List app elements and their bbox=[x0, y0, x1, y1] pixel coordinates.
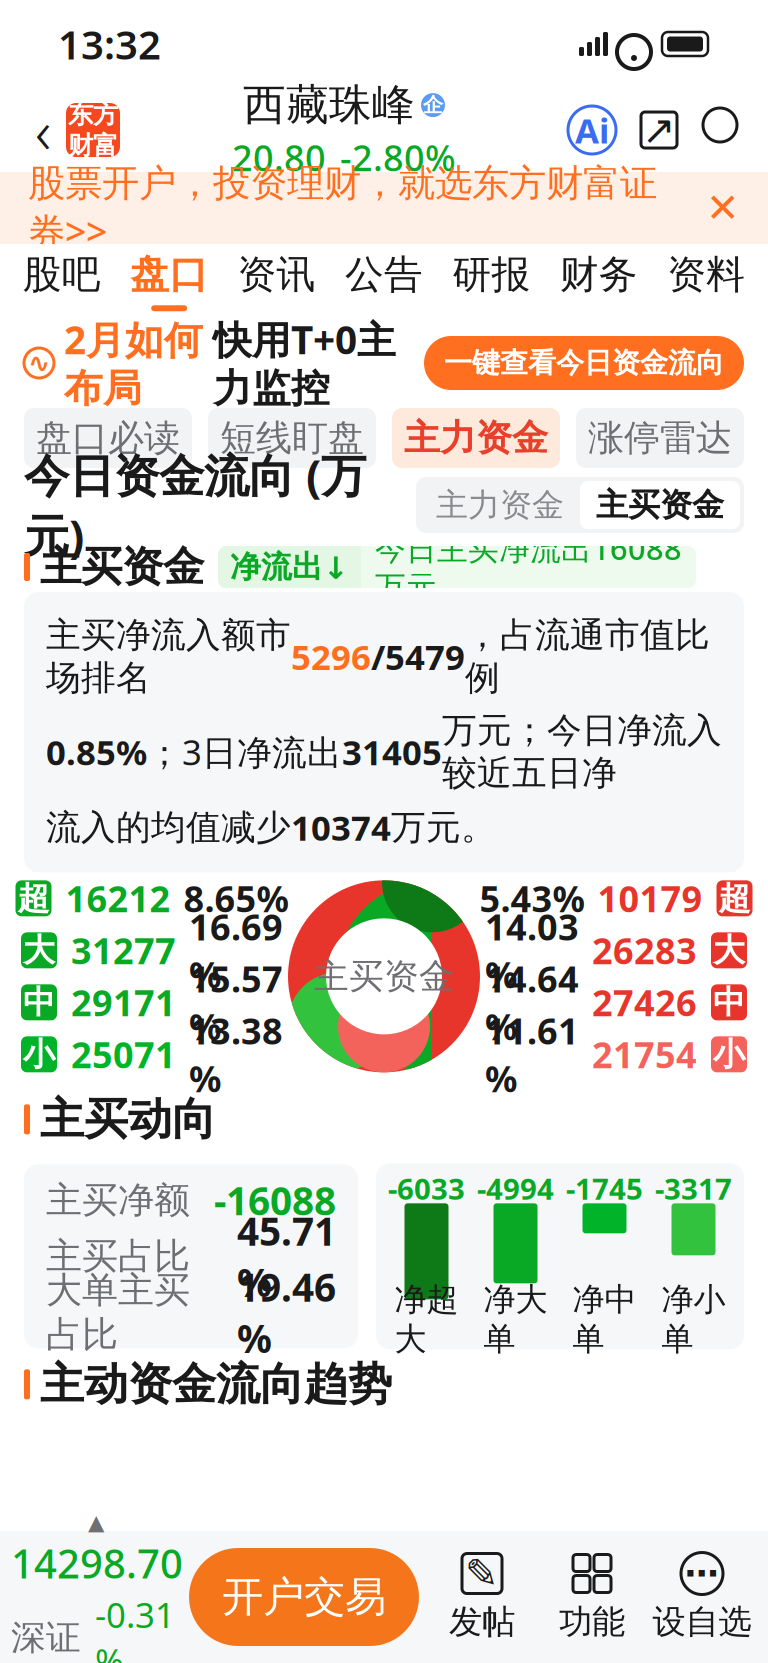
staticText: ✎ bbox=[465, 1551, 499, 1596]
staticText: 16.69% bbox=[189, 903, 283, 998]
staticText: 西藏珠峰 bbox=[243, 79, 415, 131]
staticText: 25071 bbox=[71, 1030, 176, 1078]
staticText: 14.64% bbox=[485, 955, 579, 1050]
button[interactable]: Back bbox=[20, 101, 66, 159]
staticText: 主力资金 bbox=[404, 416, 548, 460]
button[interactable]: 功能 bbox=[537, 1551, 647, 1642]
staticText: 资料 bbox=[667, 251, 745, 298]
staticText: -6033 bbox=[388, 1169, 465, 1208]
staticText: 公告 bbox=[345, 251, 423, 298]
staticText: /5479 bbox=[371, 634, 465, 680]
staticText: 31277 bbox=[71, 926, 176, 974]
staticText: ⋯ bbox=[684, 1554, 719, 1593]
button[interactable]: 主力资金 bbox=[392, 408, 560, 468]
staticText: 小 bbox=[23, 1035, 55, 1074]
staticText: 万元；今日净流入较近五日净 bbox=[442, 709, 722, 794]
staticText: 股票开户，投资理财，就选东方财富证券>> bbox=[28, 160, 657, 256]
staticText: 45.71% bbox=[237, 1205, 336, 1308]
staticText: 盘口必读 bbox=[36, 416, 180, 460]
button[interactable]: 东方财富 bbox=[66, 103, 120, 157]
staticText: 超 bbox=[718, 879, 750, 918]
staticText: 10179 bbox=[597, 874, 702, 922]
button[interactable]: 一键查看今日资金流向 bbox=[424, 336, 744, 390]
staticText: 14.03% bbox=[485, 903, 579, 998]
staticText: 主力资金 bbox=[436, 485, 564, 525]
staticText: -1745 bbox=[566, 1169, 643, 1208]
staticText: 净中单 bbox=[572, 1280, 636, 1359]
staticText: 流入的均值减少 bbox=[46, 806, 291, 849]
button[interactable]: 短线盯盘 bbox=[208, 408, 376, 468]
staticText: 26283 bbox=[592, 926, 697, 974]
staticText: 财务 bbox=[560, 251, 638, 298]
staticText: 主买净流入额市场排名 bbox=[46, 614, 291, 699]
staticText: ∿ bbox=[28, 348, 50, 378]
staticText: 13.38% bbox=[189, 1007, 283, 1102]
staticText: 主买资金 bbox=[314, 955, 454, 998]
staticText: 5296 bbox=[291, 634, 371, 680]
staticText: -0.31% bbox=[95, 1592, 175, 1663]
staticText: 净小单 bbox=[661, 1280, 725, 1359]
button[interactable]: 研报 bbox=[438, 244, 545, 318]
staticText: 今日主买净流出16088万元 bbox=[375, 528, 682, 606]
staticText: ▲ bbox=[88, 1510, 104, 1534]
button[interactable]: 盘口 bbox=[115, 244, 223, 318]
button[interactable]: ⋯ bbox=[647, 1551, 757, 1642]
button[interactable]: ∿ bbox=[24, 314, 396, 412]
button[interactable]: Search bbox=[702, 106, 748, 154]
staticText: -2.80% bbox=[340, 133, 456, 181]
staticText: 发帖 bbox=[449, 1601, 515, 1642]
button[interactable]: 资料 bbox=[653, 244, 760, 318]
staticText: 15.57% bbox=[189, 955, 283, 1050]
staticText: 净大单 bbox=[483, 1280, 547, 1359]
staticText: 主买占比 bbox=[46, 1234, 190, 1278]
staticText: 股吧 bbox=[23, 251, 101, 298]
staticText: 16212 bbox=[65, 874, 170, 922]
button[interactable]: Share bbox=[636, 106, 682, 154]
staticText: 涨停雷达 bbox=[588, 416, 732, 460]
staticText: 21754 bbox=[592, 1030, 697, 1078]
staticText: 11.61% bbox=[485, 1007, 579, 1102]
staticText: 东方 财富 bbox=[68, 99, 118, 161]
staticText: 主买资金 bbox=[596, 485, 724, 525]
staticText: 深证 bbox=[11, 1616, 81, 1659]
staticText: 小 bbox=[713, 1035, 745, 1074]
staticText: 开户交易 bbox=[222, 1572, 386, 1622]
staticText: 大 bbox=[713, 931, 745, 970]
button[interactable]: 资讯 bbox=[223, 244, 330, 318]
staticText: 主买资金 bbox=[40, 542, 204, 592]
button[interactable]: AI助手 bbox=[568, 106, 616, 154]
button[interactable]: 主买资金 bbox=[580, 481, 740, 529]
staticText: 14298.70 bbox=[11, 1536, 183, 1590]
staticText: ‹ bbox=[35, 89, 51, 171]
button[interactable]: 开户交易 bbox=[189, 1548, 419, 1646]
staticText: 27426 bbox=[592, 978, 697, 1026]
staticText: 29171 bbox=[71, 978, 176, 1026]
staticText: 短线盯盘 bbox=[220, 416, 364, 460]
staticText: 大单主买占比 bbox=[46, 1268, 190, 1356]
button[interactable]: 股吧 bbox=[8, 244, 115, 318]
button[interactable]: 盘口必读 bbox=[24, 408, 192, 468]
button[interactable]: ✎ bbox=[427, 1551, 537, 1642]
staticText: 19.46% bbox=[237, 1261, 336, 1364]
staticText: ；3日净流出 bbox=[147, 729, 342, 775]
staticText: 净超大 bbox=[394, 1280, 458, 1359]
button[interactable]: 财务 bbox=[545, 244, 652, 318]
button[interactable]: 股票开户，投资理财，就选东方财富证券>> bbox=[0, 172, 768, 244]
staticText: 企 bbox=[423, 93, 443, 117]
button[interactable]: 主力资金 bbox=[420, 481, 580, 529]
staticText: 万元。 bbox=[391, 806, 496, 849]
staticText: 31405 bbox=[342, 729, 442, 775]
button[interactable]: 公告 bbox=[330, 244, 438, 318]
staticText: -16088 bbox=[214, 1175, 336, 1226]
staticText: ✕ bbox=[706, 185, 740, 231]
staticText: 净流出↓ bbox=[230, 548, 349, 586]
staticText: ↗ bbox=[642, 107, 676, 153]
staticText: 中 bbox=[23, 983, 55, 1022]
staticText: 功能 bbox=[559, 1601, 625, 1642]
staticText: ，占流通市值比例 bbox=[465, 614, 710, 699]
staticText: 超 bbox=[17, 879, 49, 918]
staticText: 主买动向 bbox=[40, 1092, 216, 1146]
staticText: 主动资金流向趋势 bbox=[40, 1357, 392, 1411]
staticText: 盘口 bbox=[130, 251, 208, 298]
button[interactable]: 涨停雷达 bbox=[576, 408, 744, 468]
